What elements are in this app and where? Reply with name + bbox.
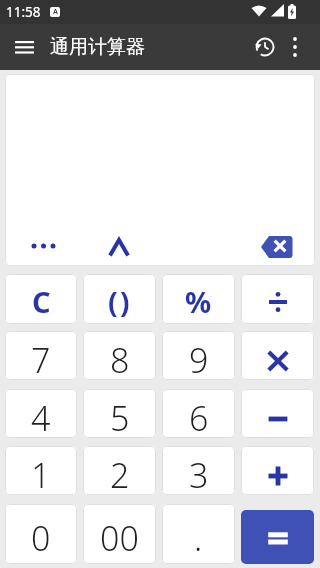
button[interactable]: C: [5, 274, 77, 324]
staticText: 00: [100, 515, 139, 561]
button[interactable]: 5: [83, 389, 156, 438]
button[interactable]: 9: [162, 331, 235, 380]
staticText: 9: [189, 337, 209, 380]
staticText: 3: [189, 452, 209, 495]
button[interactable]: 7: [5, 331, 77, 380]
staticText: 11:58: [6, 3, 41, 21]
button[interactable]: [99, 232, 139, 262]
button[interactable]: [254, 36, 276, 58]
button[interactable]: 8: [83, 331, 156, 380]
button[interactable]: [241, 510, 314, 564]
staticText: A: [53, 7, 58, 17]
button[interactable]: [241, 274, 314, 324]
staticText: 7: [31, 337, 51, 380]
button[interactable]: [290, 36, 300, 58]
button[interactable]: %: [162, 274, 235, 324]
staticText: %: [185, 282, 212, 321]
button[interactable]: [255, 230, 299, 264]
button[interactable]: 4: [5, 389, 77, 438]
staticText: 2: [110, 452, 130, 495]
button[interactable]: .: [162, 504, 235, 564]
staticText: 5: [110, 395, 130, 438]
button[interactable]: (): [83, 274, 156, 324]
staticText: .: [194, 515, 203, 561]
button[interactable]: [15, 37, 34, 57]
button[interactable]: 3: [162, 446, 235, 495]
staticText: 6: [189, 395, 209, 438]
staticText: (): [108, 282, 132, 321]
staticText: 4: [31, 395, 51, 438]
button[interactable]: 6: [162, 389, 235, 438]
staticText: 1: [31, 452, 51, 495]
button[interactable]: 00: [83, 504, 156, 564]
staticText: 通用计算器: [50, 35, 145, 59]
button[interactable]: 2: [83, 446, 156, 495]
staticText: 8: [110, 337, 130, 380]
button[interactable]: 1: [5, 446, 77, 495]
staticText: C: [32, 282, 51, 321]
button[interactable]: [241, 446, 314, 495]
button[interactable]: 0: [5, 504, 77, 564]
button[interactable]: [241, 331, 314, 380]
staticText: 0: [31, 515, 51, 561]
button[interactable]: [23, 232, 63, 260]
button[interactable]: [241, 389, 314, 438]
